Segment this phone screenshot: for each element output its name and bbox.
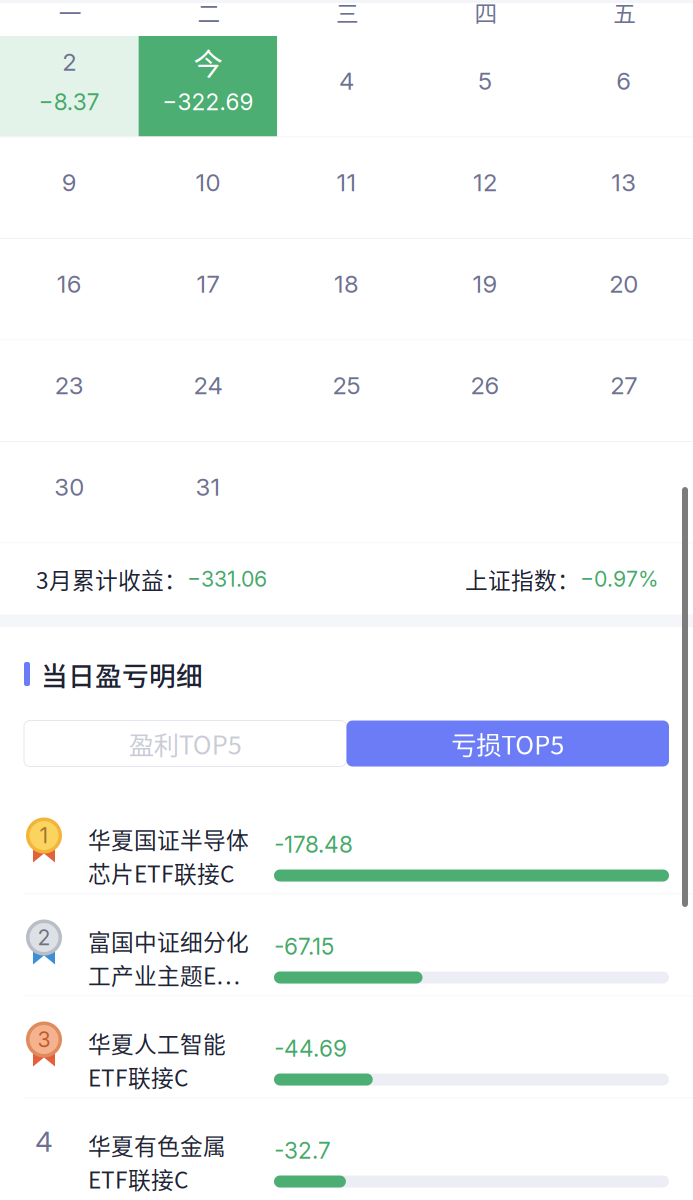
staticText: -32.7 [274, 1137, 331, 1164]
button[interactable]: 12 [416, 137, 554, 238]
staticText: 4 [339, 66, 354, 95]
staticText: 今 [193, 41, 222, 83]
staticText: 华夏人工智能 [88, 1026, 226, 1059]
staticText: 1 [39, 823, 48, 848]
button[interactable]: 27 [554, 340, 693, 441]
button[interactable]: 3 [0, 996, 693, 1097]
staticText: −8.37 [39, 88, 100, 116]
staticText: -67.15 [274, 933, 334, 960]
button[interactable]: 25 [277, 340, 416, 441]
staticText: 18 [334, 269, 359, 298]
button[interactable]: 1 [0, 792, 693, 893]
button[interactable]: 5 [416, 36, 554, 136]
staticText: 上证指数： [465, 563, 580, 595]
button[interactable]: 亏损TOP5 [346, 720, 669, 766]
staticText: -178.48 [274, 831, 353, 858]
staticText: ETF联接C [88, 1060, 188, 1093]
staticText: 华夏有色金属 [88, 1128, 226, 1161]
staticText: 芯片ETF联接C [88, 856, 234, 889]
staticText: 亏损TOP5 [451, 725, 564, 762]
button[interactable]: 9 [0, 137, 139, 238]
button[interactable]: 6 [554, 36, 693, 136]
staticText: 20 [609, 269, 638, 298]
staticText: 3月累计收益： [36, 563, 187, 595]
staticText: −322.69 [162, 88, 253, 116]
button[interactable]: 11 [277, 137, 416, 238]
staticText: ETF联接C [88, 1162, 188, 1195]
button[interactable]: 4 [277, 36, 416, 136]
staticText: 五 [613, 0, 636, 28]
button[interactable]: 18 [277, 239, 416, 339]
button[interactable]: 13 [554, 137, 693, 238]
staticText: 16 [57, 269, 82, 298]
staticText: 27 [610, 371, 637, 400]
button[interactable]: 31 [139, 442, 277, 542]
button[interactable]: 20 [554, 239, 693, 339]
staticText: 富国中证细分化 [88, 924, 249, 957]
staticText: 5 [478, 66, 492, 95]
staticText: 4 [35, 1125, 53, 1158]
staticText: 四 [475, 0, 498, 28]
staticText: 25 [332, 371, 360, 400]
staticText: 2 [62, 47, 76, 76]
staticText: 12 [473, 168, 497, 197]
staticText: 9 [62, 168, 77, 197]
staticText: 11 [336, 168, 356, 197]
staticText: −331.06 [187, 566, 267, 592]
staticText: 2 [37, 925, 50, 950]
button[interactable] [554, 442, 693, 542]
staticText: 17 [196, 269, 219, 298]
staticText: 13 [611, 168, 636, 197]
staticText: 24 [193, 371, 222, 400]
button[interactable]: 2 [0, 894, 693, 995]
staticText: 30 [54, 472, 84, 501]
staticText: 盈利TOP5 [129, 725, 242, 762]
staticText: 工产业主题E… [88, 958, 240, 991]
staticText: −0.97% [580, 566, 659, 592]
staticText: 一 [59, 0, 82, 28]
button[interactable]: 30 [0, 442, 139, 542]
staticText: 华夏国证半导体 [88, 822, 249, 855]
staticText: 三 [336, 0, 359, 28]
button[interactable]: 16 [0, 239, 139, 339]
staticText: 19 [473, 269, 498, 298]
staticText: -44.69 [274, 1035, 347, 1062]
staticText: 23 [55, 371, 84, 400]
staticText: 10 [195, 168, 220, 197]
button[interactable]: 24 [139, 340, 277, 441]
button[interactable]: 19 [416, 239, 554, 339]
button[interactable]: 2 [0, 36, 139, 136]
button[interactable]: 17 [139, 239, 277, 339]
staticText: 3 [37, 1027, 50, 1052]
staticText: 二 [197, 0, 220, 28]
staticText: 6 [616, 66, 631, 95]
button[interactable]: 26 [416, 340, 554, 441]
staticText: 31 [195, 472, 220, 501]
staticText: 26 [471, 371, 500, 400]
button[interactable]: 今 [139, 36, 277, 136]
button[interactable]: 23 [0, 340, 139, 441]
staticText: 当日盈亏明细 [41, 655, 203, 693]
button[interactable]: 10 [139, 137, 277, 238]
button[interactable]: 4 [0, 1098, 693, 1199]
button[interactable]: 盈利TOP5 [24, 720, 346, 766]
